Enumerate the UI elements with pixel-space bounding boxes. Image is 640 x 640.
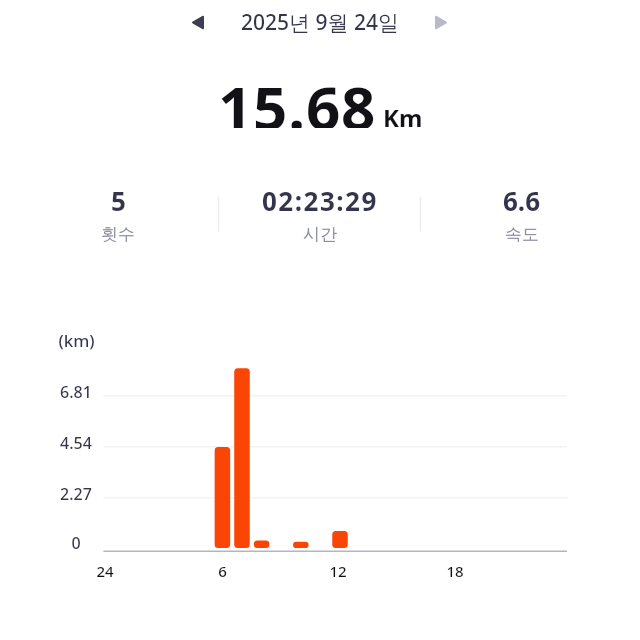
staticText: 2025년 9월 24일 bbox=[0, 8, 640, 37]
staticText: 02:23:29 bbox=[262, 183, 378, 218]
button[interactable]: Next day bbox=[422, 3, 460, 41]
button[interactable]: 02:23:29 bbox=[219, 183, 421, 245]
staticText: 12 bbox=[329, 561, 347, 581]
staticText: Km bbox=[383, 101, 423, 134]
button[interactable]: 6.6 bbox=[421, 183, 623, 245]
button[interactable]: Previous day bbox=[178, 3, 216, 41]
staticText: 2.27 bbox=[60, 483, 92, 505]
staticText: 0 bbox=[71, 532, 81, 554]
staticText: 횟수 bbox=[101, 224, 135, 245]
staticText: 6 bbox=[218, 561, 227, 581]
staticText: (km) bbox=[58, 329, 95, 352]
button[interactable]: 5 bbox=[17, 183, 219, 245]
staticText: 6.81 bbox=[60, 381, 92, 403]
staticText: 속도 bbox=[505, 224, 539, 245]
staticText: 15.68 bbox=[218, 66, 377, 128]
staticText: 4.54 bbox=[60, 432, 92, 454]
staticText: 6.6 bbox=[503, 183, 541, 218]
staticText: 24 bbox=[96, 561, 114, 581]
staticText: 시간 bbox=[303, 224, 337, 245]
staticText: 5 bbox=[111, 183, 126, 218]
staticText: 18 bbox=[446, 561, 464, 581]
